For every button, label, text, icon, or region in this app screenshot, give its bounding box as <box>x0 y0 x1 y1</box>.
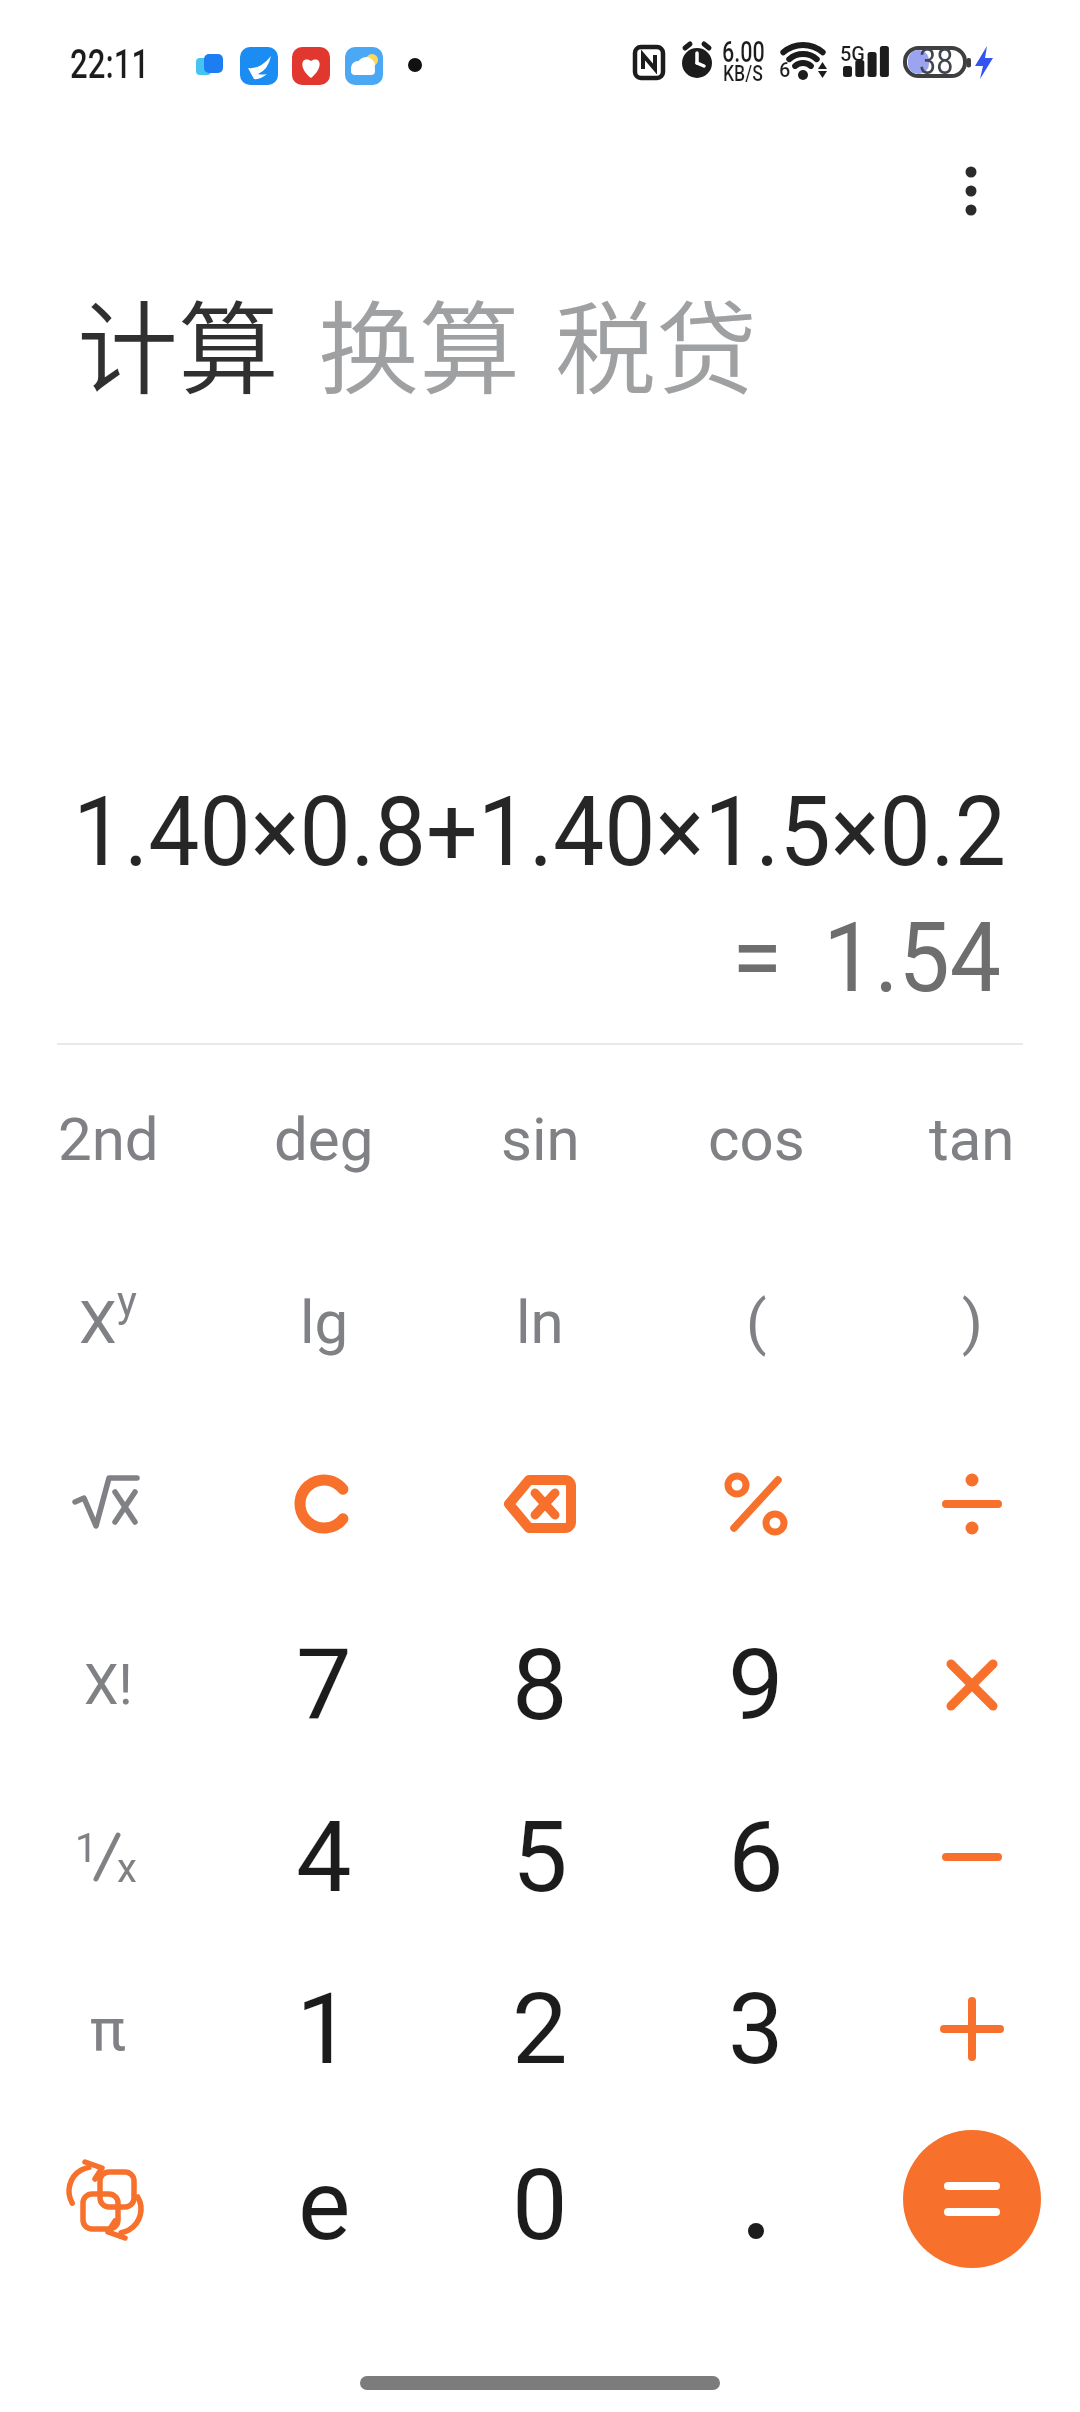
button[interactable]: 7 <box>224 1605 424 1765</box>
button[interactable] <box>8 1424 208 1584</box>
staticText: tan <box>929 1104 1015 1174</box>
button[interactable]: 2 <box>440 1949 640 2109</box>
button[interactable]: 1 <box>8 1777 208 1937</box>
staticText: 5 <box>512 1799 568 1915</box>
button[interactable]: tan <box>872 1059 1072 1219</box>
button[interactable] <box>897 2124 1047 2274</box>
staticText: ( <box>746 1287 767 1357</box>
button[interactable] <box>872 1777 1072 1937</box>
staticText: ln <box>516 1287 564 1357</box>
staticText: 2 <box>512 1971 568 2087</box>
button[interactable]: e <box>224 2125 424 2285</box>
button[interactable]: ( <box>656 1242 856 1402</box>
staticText: 1.40×0.8+1.40×1.5×0.2 <box>50 776 1006 889</box>
staticText: lg <box>300 1287 349 1357</box>
staticText: X! <box>84 1653 133 1717</box>
staticText: y <box>117 1277 137 1326</box>
staticText: ) <box>962 1287 983 1357</box>
button[interactable]: 计算 <box>77 269 280 415</box>
staticText: 9 <box>728 1627 784 1743</box>
staticText: deg <box>274 1104 374 1174</box>
button[interactable]: ln <box>440 1242 640 1402</box>
button[interactable] <box>656 2196 856 2266</box>
button[interactable]: 4 <box>224 1777 424 1937</box>
staticText: 6 <box>779 58 791 81</box>
button[interactable]: lg <box>224 1242 424 1402</box>
staticText: 38 <box>919 41 954 83</box>
staticText: X <box>79 1287 117 1357</box>
staticText: cos <box>708 1104 805 1174</box>
button[interactable] <box>903 2130 1041 2268</box>
staticText: 3 <box>728 1971 784 2087</box>
button[interactable] <box>926 132 1016 252</box>
staticText: 22:11 <box>70 40 150 88</box>
button[interactable]: 5 <box>440 1777 640 1937</box>
staticText: x <box>117 1845 137 1892</box>
button[interactable]: 9 <box>656 1605 856 1765</box>
button[interactable]: 3 <box>656 1949 856 2109</box>
button[interactable]: π <box>8 1949 208 2109</box>
button[interactable] <box>8 2119 208 2279</box>
staticText: 8 <box>512 1627 568 1743</box>
button[interactable] <box>872 1949 1072 2109</box>
staticText: 7 <box>296 1627 352 1743</box>
button[interactable]: X! <box>8 1605 208 1765</box>
button[interactable] <box>872 1424 1072 1584</box>
staticText: 0 <box>512 2147 568 2263</box>
button[interactable] <box>656 1424 856 1584</box>
button[interactable]: 2nd <box>8 1059 208 1219</box>
button[interactable]: ) <box>872 1242 1072 1402</box>
staticText: e <box>298 2147 351 2263</box>
staticText: = 1.54 <box>50 902 1001 1015</box>
staticText: 5G <box>840 42 865 65</box>
staticText: sin <box>501 1104 580 1174</box>
button[interactable] <box>872 1605 1072 1765</box>
button[interactable]: X <box>8 1242 208 1402</box>
staticText: 1 <box>75 1825 98 1872</box>
staticText: 6.00 <box>722 34 765 69</box>
button[interactable]: 0 <box>440 2125 640 2285</box>
button[interactable]: deg <box>224 1059 424 1219</box>
staticText: 6 <box>728 1799 784 1915</box>
button[interactable] <box>440 1424 640 1584</box>
button[interactable]: 税贷 <box>555 269 758 415</box>
button[interactable]: 6 <box>656 1777 856 1937</box>
staticText: 4 <box>296 1799 352 1915</box>
staticText: 1 <box>296 1971 352 2087</box>
button[interactable]: cos <box>656 1059 856 1219</box>
staticText: 税贷 <box>555 269 758 415</box>
button[interactable]: 1 <box>224 1949 424 2109</box>
button[interactable]: sin <box>440 1059 640 1219</box>
staticText: π <box>90 1994 126 2064</box>
button[interactable] <box>224 1424 424 1584</box>
button[interactable]: 换算 <box>318 269 521 415</box>
staticText: KB/S <box>723 61 763 87</box>
staticText: 计算 <box>77 269 280 415</box>
staticText: 换算 <box>318 269 521 415</box>
staticText: 2nd <box>58 1104 159 1174</box>
button[interactable]: 8 <box>440 1605 640 1765</box>
